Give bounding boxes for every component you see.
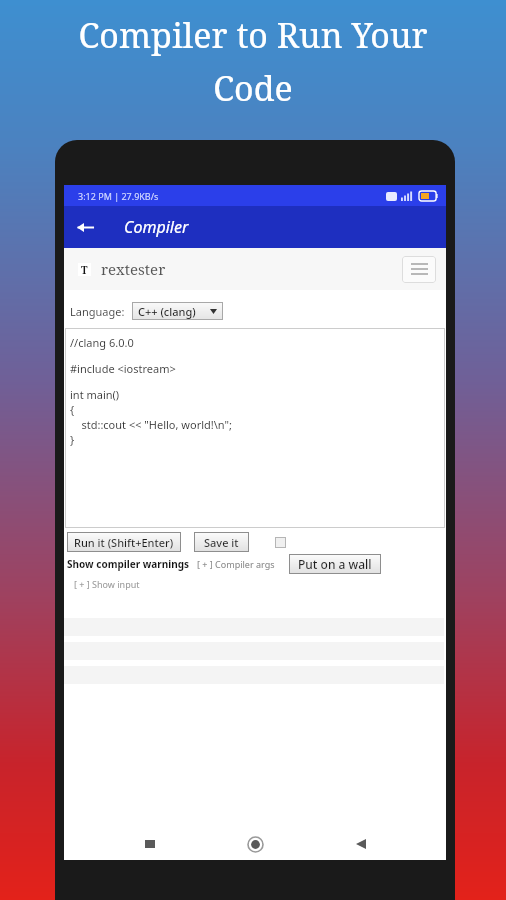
button[interactable]: Show compiler warnings: [67, 557, 190, 571]
button[interactable]: Home: [235, 828, 275, 860]
staticText: 3:12 PM | 27.9KB/s: [78, 190, 159, 202]
button[interactable]: Put on a wall: [289, 554, 381, 574]
button[interactable]: Save it: [194, 532, 249, 552]
staticText: Compiler to Run Your Code: [16, 12, 490, 111]
staticText: #include <iostream>: [70, 361, 176, 376]
button[interactable]: [ + ] Show input: [74, 578, 140, 590]
staticText: C++ (clang): [138, 304, 196, 319]
button[interactable]: Recents: [130, 828, 170, 860]
staticText: //clang 6.0.0: [70, 335, 134, 350]
button[interactable]: Run it (Shift+Enter): [67, 532, 181, 552]
staticText: int main(): [70, 387, 120, 402]
staticText: std::cout << "Hello, world!\n";: [70, 417, 232, 432]
staticText: {: [70, 402, 75, 417]
button[interactable]: Menu: [402, 256, 436, 283]
staticText: rextester: [101, 259, 166, 279]
button[interactable]: Back: [64, 206, 106, 248]
button[interactable]: //clang 6.0.0: [65, 328, 445, 528]
staticText: Run it (Shift+Enter): [74, 535, 174, 550]
staticText: Language:: [70, 304, 125, 319]
staticText: }: [70, 432, 75, 447]
staticText: Compiler: [124, 216, 189, 238]
button[interactable]: Checkbox: [275, 537, 286, 548]
button[interactable]: C++ (clang): [132, 302, 223, 320]
staticText: Save it: [204, 535, 239, 550]
button[interactable]: Back: [341, 828, 381, 860]
staticText: T: [81, 263, 88, 276]
staticText: Put on a wall: [298, 556, 372, 572]
button[interactable]: [ + ] Compiler args: [197, 558, 275, 570]
